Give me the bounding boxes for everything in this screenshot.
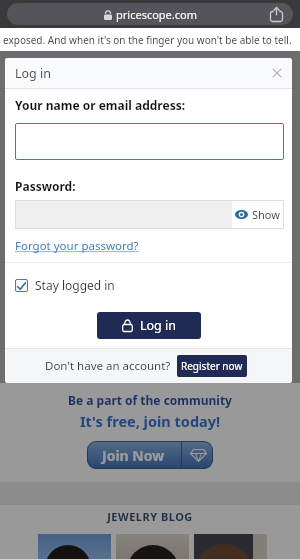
staticText: Join Now [102, 446, 165, 465]
staticText: pricescope.com [116, 7, 197, 22]
button[interactable] [270, 7, 283, 22]
button[interactable]: Log in [97, 312, 201, 339]
staticText: JEWELRY BLOG [0, 509, 300, 524]
button[interactable]: Join Now [87, 441, 213, 469]
staticText: Log in [140, 317, 177, 334]
button[interactable]: Register now [177, 355, 247, 377]
staticText: Password: [15, 178, 76, 194]
button[interactable]: pricescope.com [7, 3, 293, 25]
staticText: Don't have an account? [45, 358, 171, 374]
button[interactable]: Show [15, 200, 284, 229]
button[interactable]: Stay logged in [15, 277, 115, 293]
staticText: It's free, join today! [0, 411, 300, 431]
staticText: Show [252, 207, 280, 222]
staticText: Be a part of the community [0, 392, 300, 408]
staticText: Log in [15, 65, 52, 82]
staticText: Your name or email address: [15, 97, 186, 113]
staticText: exposed. And when it's on the finger you… [3, 33, 292, 47]
button[interactable] [264, 60, 290, 86]
staticText: Register now [181, 359, 243, 373]
button[interactable]: Show [232, 201, 283, 228]
staticText: Stay logged in [35, 277, 115, 293]
button[interactable]: Forgot your password? [15, 238, 139, 254]
button[interactable] [15, 123, 284, 160]
